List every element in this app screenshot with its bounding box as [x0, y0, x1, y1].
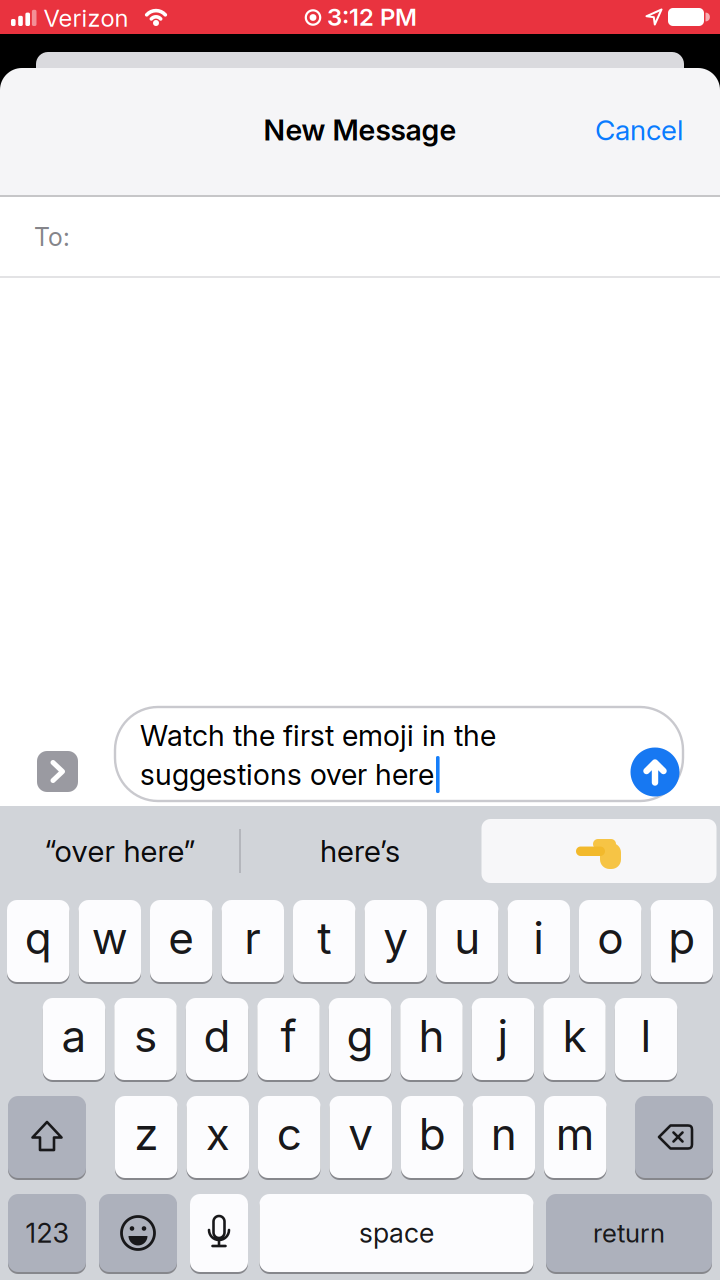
staticText: y [383, 911, 408, 965]
button[interactable]: u [436, 899, 498, 983]
staticText: 123 [25, 1217, 68, 1249]
button[interactable]: Dictate [190, 1194, 248, 1272]
button[interactable]: t [293, 899, 355, 983]
staticText: c [277, 1107, 302, 1161]
staticText: w [92, 911, 128, 965]
button[interactable]: l [615, 997, 677, 1081]
button[interactable]: To: [0, 198, 720, 276]
button[interactable]: h [400, 997, 463, 1081]
button[interactable]: App drawer [37, 751, 78, 792]
button[interactable]: r [221, 899, 284, 983]
staticText: here’s [320, 833, 400, 869]
button[interactable]: Delete [635, 1096, 713, 1178]
button[interactable]: m [544, 1095, 606, 1179]
staticText: b [419, 1107, 446, 1161]
button[interactable]: s [114, 997, 177, 1081]
staticText: 3:12 PM [327, 2, 417, 31]
button[interactable]: c [258, 1095, 320, 1179]
staticText: n [491, 1107, 517, 1161]
staticText: Verizon [43, 3, 128, 32]
button[interactable]: j [472, 997, 534, 1081]
button[interactable]: 123 [8, 1193, 86, 1273]
staticText: j [497, 1009, 508, 1063]
staticText: i [533, 911, 544, 965]
button[interactable]: n [472, 1095, 535, 1179]
button[interactable]: “over here” [1, 819, 239, 883]
button[interactable]: f [257, 997, 320, 1081]
button[interactable]: here’s [241, 819, 479, 883]
staticText: x [206, 1107, 230, 1161]
staticText: o [597, 911, 623, 965]
button[interactable]: Emoji [99, 1194, 177, 1272]
staticText: f [280, 1009, 296, 1063]
button[interactable]: Cancel [595, 113, 683, 147]
staticText: e [168, 911, 194, 965]
staticText: p [668, 911, 695, 965]
button[interactable]: x [186, 1095, 249, 1179]
button[interactable]: d [186, 997, 248, 1081]
button[interactable]: o [579, 899, 641, 983]
staticText: a [61, 1009, 86, 1063]
staticText: s [134, 1009, 157, 1063]
button[interactable]: b [401, 1095, 463, 1179]
staticText: v [348, 1107, 373, 1161]
staticText: To: [34, 222, 70, 252]
staticText: l [640, 1009, 651, 1063]
staticText: Watch the first emoji in the [140, 718, 496, 753]
button[interactable]: Insert pointing hand emoji [481, 819, 716, 883]
staticText: suggestions over here [140, 757, 434, 792]
staticText: k [562, 1009, 586, 1063]
button[interactable]: a [43, 997, 105, 1081]
button[interactable]: k [543, 997, 606, 1081]
staticText: g [346, 1009, 373, 1063]
staticText: h [418, 1009, 444, 1063]
button[interactable]: v [329, 1095, 392, 1179]
staticText: t [317, 911, 331, 965]
staticText: “over here” [44, 833, 195, 869]
staticText: Cancel [595, 113, 683, 147]
staticText: return [593, 1217, 665, 1249]
button[interactable]: w [78, 899, 141, 983]
staticText: r [244, 911, 261, 965]
staticText: space [359, 1217, 434, 1249]
button[interactable]: q [7, 899, 69, 983]
button[interactable]: g [329, 997, 391, 1081]
button[interactable]: return [546, 1193, 712, 1273]
button[interactable]: Send [630, 747, 679, 796]
button[interactable]: i [507, 899, 570, 983]
button[interactable]: space [259, 1193, 533, 1273]
button[interactable]: p [650, 899, 713, 983]
button[interactable]: Shift [8, 1096, 86, 1178]
staticText: u [454, 911, 480, 965]
staticText: New Message [263, 112, 456, 148]
button[interactable]: y [364, 899, 427, 983]
button[interactable]: e [150, 899, 212, 983]
staticText: d [203, 1009, 230, 1063]
staticText: z [134, 1107, 158, 1161]
staticText: q [25, 911, 52, 965]
staticText: m [556, 1107, 595, 1161]
button[interactable]: z [115, 1095, 177, 1179]
